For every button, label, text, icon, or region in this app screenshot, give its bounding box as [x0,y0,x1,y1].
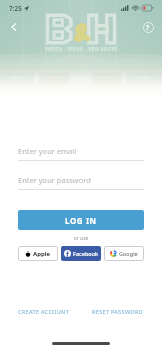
staticText: CREATE ACCOUNT [18,308,70,315]
button[interactable]: Enter your password [18,175,144,190]
button[interactable]: CREATE ACCOUNT [18,308,70,315]
button[interactable]: Google [104,246,144,261]
staticText: LOG IN [65,215,97,226]
staticText: PHOTO · VIDEO · PRO AUDIO [45,46,118,52]
staticText: Apple [33,250,51,258]
staticText: Facebook [73,250,99,257]
button[interactable]: Help [139,18,157,36]
staticText: Enter your password [18,175,91,185]
staticText: Enter your email [18,146,77,156]
staticText: ? [146,23,150,32]
staticText: Google [119,250,138,257]
staticText: or use [0,235,162,242]
button[interactable]: RESET PASSWORD [92,308,144,315]
button[interactable]: Enter your email [18,146,144,161]
staticText: 7:25 [9,4,22,13]
staticText: RESET PASSWORD [92,308,144,315]
button[interactable]: Apple [18,246,58,261]
button[interactable]: LOG IN [18,210,144,230]
button[interactable]: Back [5,18,23,36]
button[interactable]: Facebook [61,246,101,261]
